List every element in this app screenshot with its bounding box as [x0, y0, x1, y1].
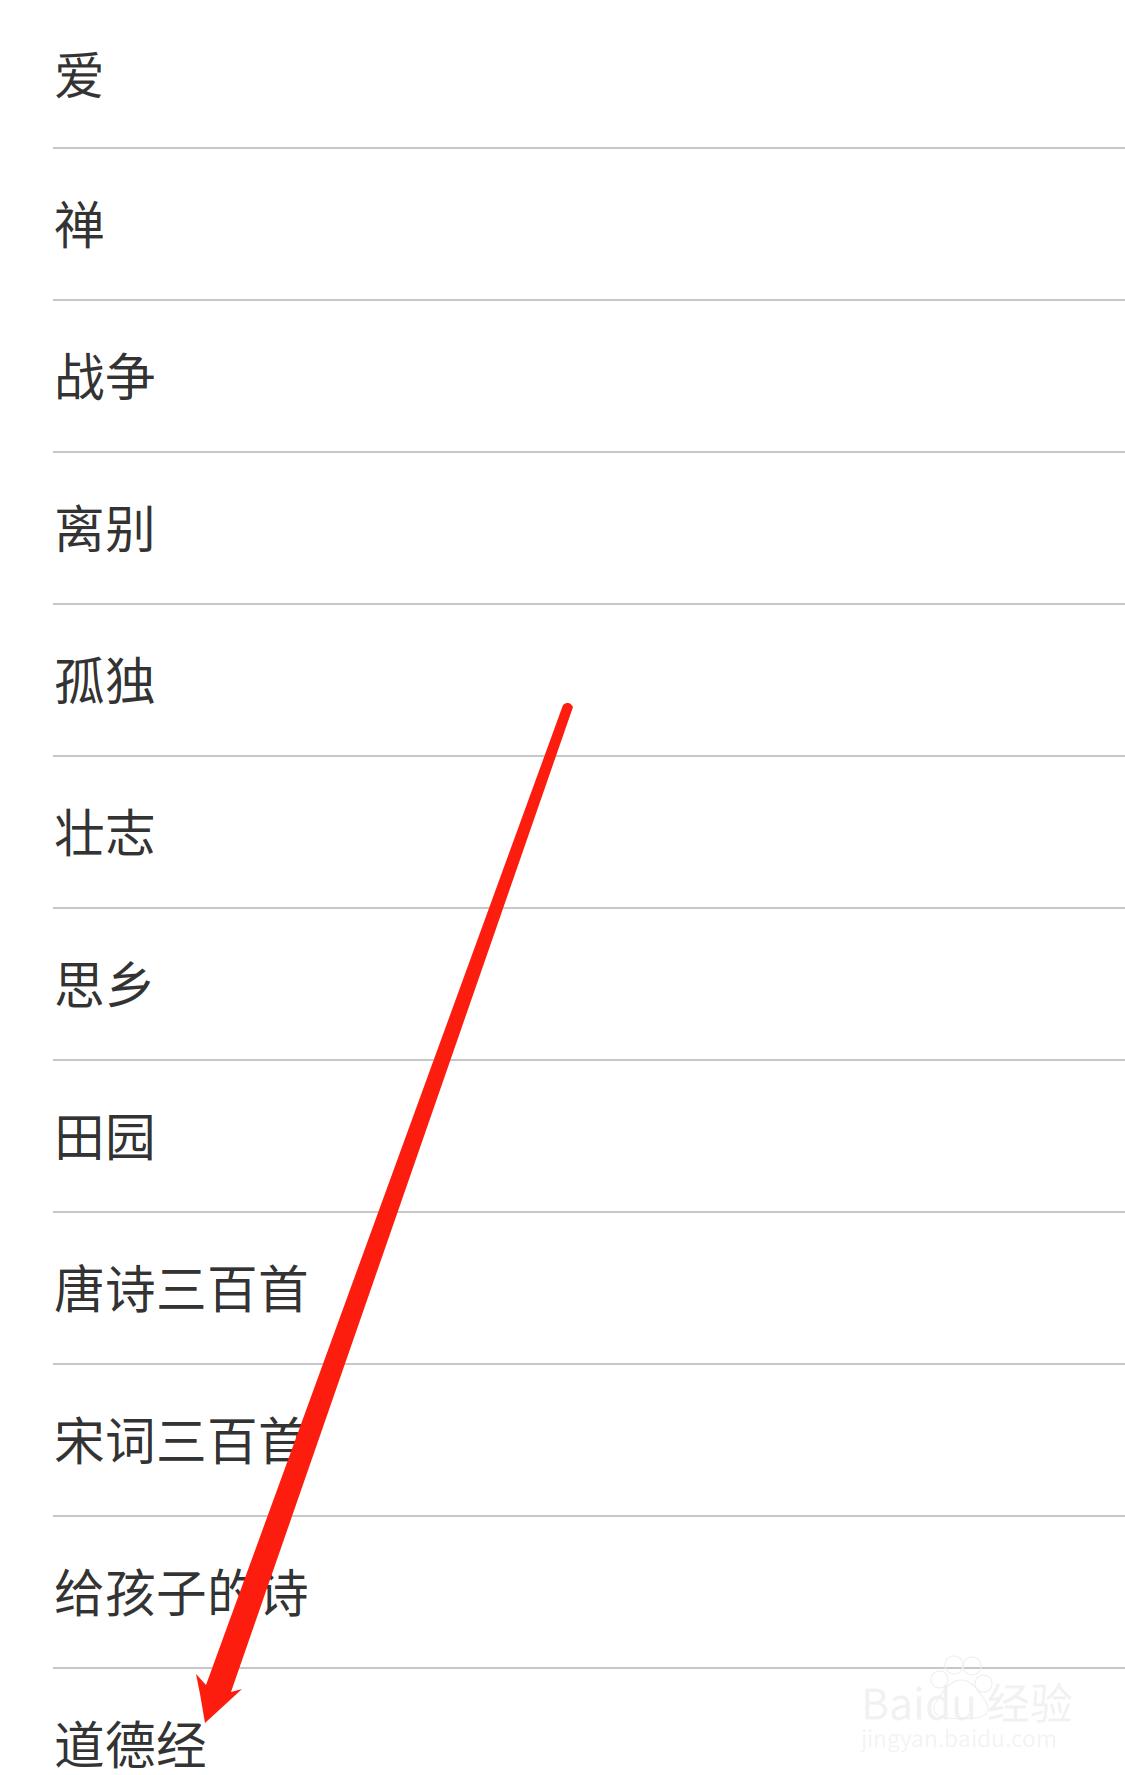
staticText: jingyan.baidu.com	[861, 1721, 1057, 1754]
staticText: 宋词三百首	[54, 1401, 309, 1475]
button[interactable]: 思乡	[0, 906, 1125, 1058]
button[interactable]: 离别	[0, 450, 1125, 602]
staticText: 壮志	[54, 793, 156, 867]
staticText: 孤独	[54, 641, 156, 715]
button[interactable]: 宋词三百首	[0, 1362, 1125, 1514]
button[interactable]: 道德经	[0, 1666, 1125, 1775]
staticText: 离别	[54, 489, 156, 563]
staticText: 禅	[54, 185, 105, 259]
button[interactable]: 壮志	[0, 754, 1125, 906]
staticText: 田园	[54, 1097, 156, 1171]
staticText: 道德经	[54, 1705, 207, 1775]
button[interactable]: 唐诗三百首	[0, 1210, 1125, 1362]
button[interactable]: 田园	[0, 1058, 1125, 1210]
staticText: 思乡	[54, 945, 156, 1019]
staticText: 战争	[54, 337, 156, 411]
staticText: 爱	[54, 36, 105, 109]
button[interactable]: 战争	[0, 298, 1125, 450]
staticText: 唐诗三百首	[54, 1249, 309, 1323]
button[interactable]: 爱	[0, 0, 1125, 146]
button[interactable]: 孤独	[0, 602, 1125, 754]
button[interactable]: 禅	[0, 146, 1125, 298]
staticText: 给孩子的诗	[54, 1553, 309, 1627]
staticText: Baidu 经验	[861, 1670, 1073, 1732]
button[interactable]: 给孩子的诗	[0, 1514, 1125, 1666]
